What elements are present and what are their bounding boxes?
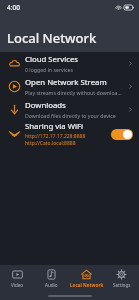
staticText: Download files directly to your device <box>25 112 116 119</box>
button[interactable]: Video <box>0 265 34 292</box>
staticText: Settings <box>113 282 131 288</box>
staticText: http://172.17.17.228:8888 <box>25 133 86 140</box>
staticText: 0 logged in services <box>25 66 73 73</box>
button[interactable]: Open Network Stream <box>0 75 139 98</box>
staticText: http://Cato.local:8888 <box>25 140 76 147</box>
staticText: 4:00 <box>7 3 20 12</box>
button[interactable]: Sharing via WiFi toggle <box>111 129 133 140</box>
button[interactable]: Local Network <box>69 265 104 292</box>
staticText: Audio <box>45 282 58 288</box>
staticText: Downloads <box>25 100 66 111</box>
staticText: Play streams directly without downloadin… <box>25 89 124 96</box>
button[interactable]: Audio <box>34 265 69 292</box>
staticText: Local Network <box>7 29 97 47</box>
staticText: Video <box>11 282 24 288</box>
staticText: Sharing via WiFi <box>25 121 84 132</box>
staticText: Cloud Services <box>25 54 79 65</box>
button[interactable]: Downloads <box>0 98 139 121</box>
staticText: Open Network Stream <box>25 77 107 88</box>
staticText: Local Network <box>70 282 104 288</box>
button[interactable]: Settings <box>104 265 139 292</box>
button[interactable]: Cloud Services <box>0 52 139 75</box>
button[interactable]: Sharing via WiFi <box>0 121 139 147</box>
